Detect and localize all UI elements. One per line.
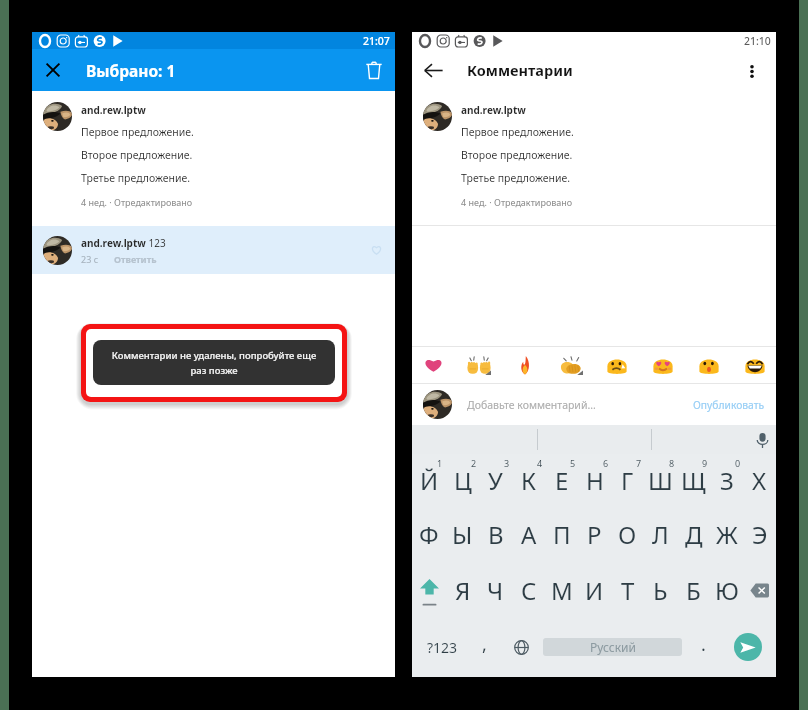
staticText: 5: [570, 457, 576, 469]
button[interactable]: Sad face: [603, 351, 631, 379]
staticText: Ш: [648, 464, 673, 497]
staticText: and.rew.lptw: [81, 236, 146, 250]
staticText: Б: [686, 574, 701, 607]
button[interactable]: Ц: [446, 454, 479, 510]
staticText: Третье предложение.: [81, 171, 191, 185]
button[interactable]: More options: [734, 49, 776, 91]
button[interactable]: Й: [412, 454, 446, 510]
button[interactable]: and.rew.lptw: [32, 91, 395, 226]
button[interactable]: ,: [468, 622, 500, 677]
staticText: 23 с: [81, 253, 99, 265]
staticText: М: [551, 574, 573, 607]
staticText: 21:10: [744, 34, 771, 48]
button[interactable]: Х: [743, 454, 776, 510]
button[interactable]: К: [512, 454, 545, 510]
button[interactable]: Ь: [644, 566, 677, 622]
button[interactable]: and.rew.lptw: [412, 91, 776, 225]
staticText: Комментарии не удалены, попробуйте еще р…: [111, 349, 317, 377]
button[interactable]: Delete: [353, 49, 395, 91]
button[interactable]: З: [710, 454, 743, 510]
button[interactable]: Heart eyes: [649, 351, 677, 379]
staticText: Ф: [419, 518, 439, 551]
staticText: .: [701, 632, 706, 657]
button[interactable]: Э: [743, 510, 776, 566]
button[interactable]: Г: [611, 454, 644, 510]
button[interactable]: П: [545, 510, 578, 566]
staticText: Русский: [590, 639, 636, 655]
button[interactable]: Ч: [479, 566, 512, 622]
staticText: Р: [587, 518, 602, 551]
staticText: 4 нед. · Отредактировано: [81, 196, 193, 208]
button[interactable]: Т: [611, 566, 644, 622]
button[interactable]: Б: [677, 566, 710, 622]
button[interactable]: Ж: [710, 510, 743, 566]
staticText: 2: [471, 457, 477, 469]
staticText: Л: [652, 518, 669, 551]
staticText: И: [585, 574, 604, 607]
button[interactable]: С: [512, 566, 545, 622]
staticText: Опубликовать: [693, 398, 765, 412]
button[interactable]: М: [545, 566, 578, 622]
button[interactable]: Close selection: [33, 50, 73, 90]
button[interactable]: Raised hands: [465, 351, 493, 379]
button[interactable]: .: [687, 622, 719, 677]
button[interactable]: Ю: [710, 566, 743, 622]
staticText: Э: [752, 518, 768, 551]
staticText: У: [488, 464, 503, 497]
staticText: Ч: [487, 574, 504, 607]
button[interactable]: Ы: [446, 510, 479, 566]
button[interactable]: А: [512, 510, 545, 566]
button[interactable]: Backspace: [743, 566, 776, 622]
button[interactable]: Change language: [505, 622, 537, 677]
button[interactable]: Voice input: [751, 429, 773, 451]
staticText: К: [521, 464, 536, 497]
button[interactable]: Д: [677, 510, 710, 566]
staticText: 4 нед. · Отредактировано: [461, 196, 573, 208]
button[interactable]: Р: [578, 510, 611, 566]
staticText: Т: [621, 574, 635, 607]
button[interactable]: Shift: [412, 566, 446, 622]
staticText: ,: [482, 632, 487, 657]
button[interactable]: Я: [446, 566, 479, 622]
staticText: Выбрано: 1: [86, 60, 176, 81]
button[interactable]: Back: [412, 49, 454, 91]
staticText: 0: [735, 457, 741, 469]
button[interactable]: Ш: [644, 454, 677, 510]
button[interactable]: Send: [734, 633, 762, 661]
button[interactable]: Щ: [677, 454, 710, 510]
button[interactable]: Опубликовать: [682, 390, 776, 420]
button[interactable]: Е: [545, 454, 578, 510]
staticText: Г: [621, 464, 634, 497]
button[interactable]: У: [479, 454, 512, 510]
button[interactable]: ?123: [420, 622, 464, 677]
button[interactable]: В: [479, 510, 512, 566]
staticText: Ь: [653, 574, 668, 607]
staticText: Х: [752, 464, 767, 497]
staticText: Ц: [454, 464, 472, 497]
staticText: Ю: [715, 574, 739, 607]
button[interactable]: Heart: [419, 351, 447, 379]
button[interactable]: Clapping hands: [557, 351, 585, 379]
button[interactable]: О: [611, 510, 644, 566]
staticText: Комментарии: [467, 60, 573, 80]
button[interactable]: И: [578, 566, 611, 622]
staticText: and.rew.lptw: [81, 103, 146, 117]
staticText: 6: [603, 457, 609, 469]
staticText: 123: [146, 236, 166, 250]
button[interactable]: Л: [644, 510, 677, 566]
button[interactable]: Fire: [511, 351, 539, 379]
staticText: Первое предложение.: [461, 125, 574, 139]
button[interactable]: Ф: [412, 510, 446, 566]
button[interactable]: Русский: [543, 638, 682, 656]
button[interactable]: Н: [578, 454, 611, 510]
staticText: В: [488, 518, 504, 551]
button[interactable]: Surprised face: [695, 351, 723, 379]
staticText: 9: [702, 457, 708, 469]
button[interactable]: and.rew.lptw: [32, 226, 395, 274]
staticText: 8: [669, 457, 675, 469]
staticText: З: [720, 464, 734, 497]
staticText: Второе предложение.: [461, 148, 573, 162]
staticText: Ж: [716, 518, 738, 551]
button[interactable]: Laughing face: [741, 351, 769, 379]
staticText: Второе предложение.: [81, 148, 193, 162]
